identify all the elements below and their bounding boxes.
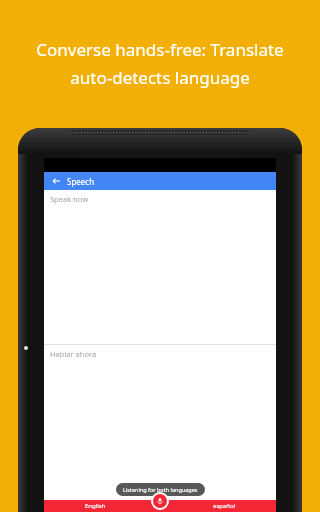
staticText: Speak now [50,194,89,204]
button[interactable]: Back [50,175,62,187]
staticText: auto-detects language [70,66,250,89]
staticText: Converse hands-free: Translate [36,38,284,61]
button[interactable]: español [173,500,276,512]
staticText: Speech [67,176,95,187]
staticText: español [213,502,236,510]
button[interactable]: English [44,500,147,512]
staticText: English [85,502,106,510]
staticText: Listening for both languages [123,486,198,493]
button[interactable]: Hablar ahora [44,345,276,500]
staticText: Hablar ahora [50,349,97,359]
button[interactable]: Microphone [151,492,169,510]
button[interactable]: Listening for both languages [116,483,205,496]
button[interactable]: Back [44,172,276,190]
